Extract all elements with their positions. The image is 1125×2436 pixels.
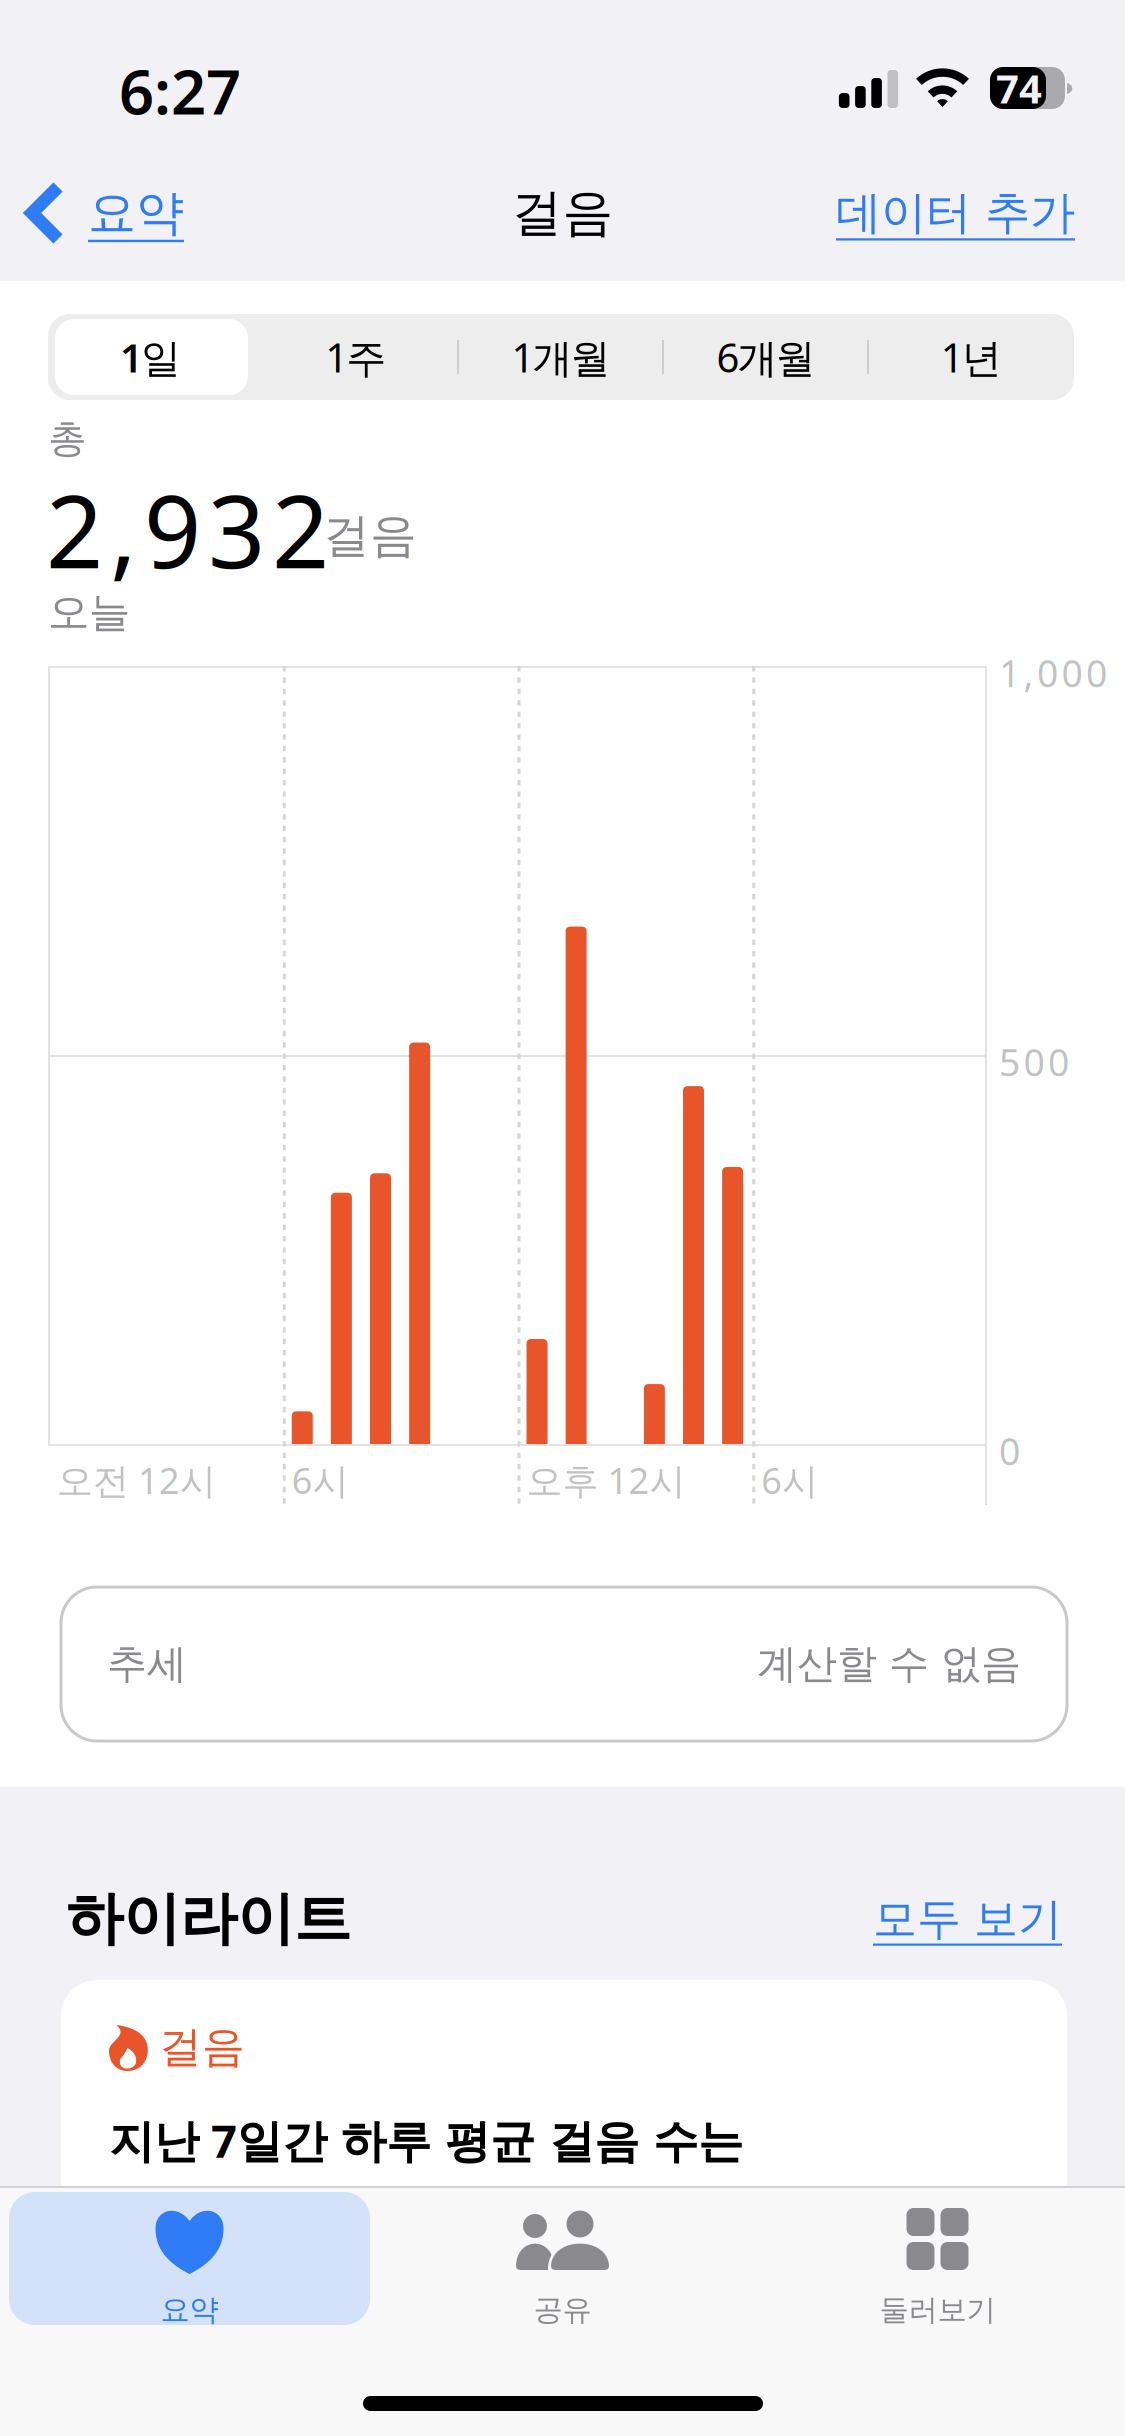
staticText: 걸음: [323, 507, 417, 564]
button[interactable]: 데이터 추가: [795, 163, 1075, 263]
staticText: 하이라이트: [66, 1884, 351, 1954]
staticText: 걸음: [511, 182, 613, 244]
button[interactable]: 1개월: [458, 314, 663, 400]
staticText: 1주: [325, 330, 386, 383]
button[interactable]: 1주: [253, 314, 458, 400]
staticText: 6시: [761, 1456, 818, 1504]
staticText: 0: [999, 1426, 1020, 1476]
staticText: 1,000: [999, 648, 1107, 698]
staticText: 500: [999, 1037, 1069, 1087]
staticText: 총: [48, 415, 87, 462]
staticText: 2,932: [46, 463, 329, 596]
button[interactable]: 둘러보기: [750, 2192, 1125, 2325]
staticText: 공유: [533, 2292, 591, 2328]
staticText: 둘러보기: [879, 2292, 995, 2328]
staticText: 오후 12시: [526, 1456, 685, 1504]
staticText: 지난 7일간 하루 평균 걸음 수는: [109, 2110, 743, 2170]
staticText: 오늘: [48, 587, 130, 638]
staticText: 추세: [107, 1639, 187, 1688]
button[interactable]: 공유: [375, 2192, 750, 2325]
staticText: 데이터 추가: [836, 185, 1075, 241]
staticText: 걸음: [159, 2021, 245, 2073]
staticText: 요약: [88, 183, 184, 242]
button[interactable]: 1일: [48, 314, 253, 400]
staticText: 1년: [941, 330, 1002, 383]
staticText: 요약: [160, 2292, 218, 2328]
staticText: 6:27: [119, 50, 241, 131]
staticText: 6시: [292, 1456, 349, 1504]
staticText: 1일: [120, 330, 181, 383]
staticText: 6개월: [717, 330, 816, 383]
button[interactable]: 모두 보기: [873, 1886, 1062, 1952]
button[interactable]: 6개월: [664, 314, 869, 400]
staticText: 오전 12시: [57, 1456, 216, 1504]
staticText: 모두 보기: [873, 1892, 1062, 1946]
staticText: 계산할 수 없음: [757, 1639, 1021, 1688]
button[interactable]: 1년: [869, 314, 1074, 400]
staticText: 1개월: [511, 330, 610, 383]
button[interactable]: 추세: [61, 1587, 1067, 1741]
button[interactable]: 요약: [9, 2192, 370, 2325]
button[interactable]: 요약: [0, 163, 260, 263]
staticText: 74: [996, 61, 1042, 114]
